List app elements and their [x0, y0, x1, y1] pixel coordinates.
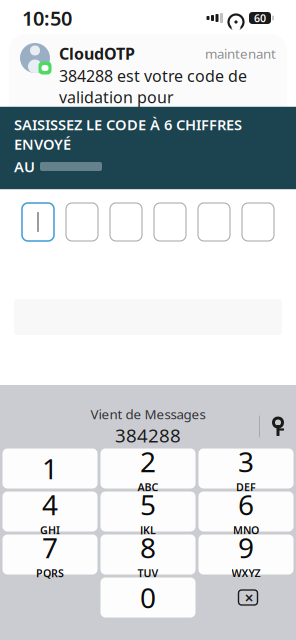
button[interactable]: 6: [198, 491, 293, 531]
staticText: 2: [140, 443, 156, 480]
staticText: WXYZ: [231, 566, 260, 580]
staticText: JKL: [140, 523, 156, 537]
staticText: 9: [238, 529, 254, 566]
staticText: 10:50: [22, 5, 72, 31]
staticText: 384288 est votre code de validation pour: [59, 65, 247, 108]
button[interactable]: 2: [100, 448, 195, 488]
button[interactable]: Code digit: [154, 203, 186, 241]
staticText: CloudOTP: [59, 43, 135, 64]
button[interactable]: 1: [2, 448, 97, 488]
staticText: TUV: [137, 566, 158, 580]
button[interactable]: CloudOTP: [9, 34, 287, 139]
staticText: SAISISSEZ LE CODE À 6 CHIFFRES ENVOYÉ: [14, 115, 242, 154]
button[interactable]: 7: [2, 534, 97, 574]
staticText: 6: [238, 486, 254, 523]
staticText: PQRS: [36, 566, 64, 580]
staticText: 4: [42, 486, 58, 523]
button[interactable]: Code digit: [110, 203, 142, 241]
button[interactable]: Code digit 1: [22, 203, 54, 241]
button[interactable]: Code digit: [66, 203, 98, 241]
staticText: DEF: [236, 480, 256, 494]
staticText: 3: [238, 443, 254, 480]
button[interactable]: Code digit: [242, 203, 274, 241]
staticText: 1: [42, 450, 58, 487]
button[interactable]: 8: [100, 534, 195, 574]
staticText: ABC: [137, 480, 158, 494]
staticText: MNO: [233, 523, 259, 537]
staticText: GHI: [40, 523, 60, 537]
staticText: 60: [254, 11, 266, 25]
button[interactable]: Delete: [198, 577, 293, 617]
button[interactable]: 0: [100, 577, 195, 617]
button[interactable]: 5: [100, 491, 195, 531]
staticText: Vient de Messages: [90, 405, 205, 423]
staticText: Yumo : Plats faits maison.: [59, 109, 253, 130]
staticText: ×: [244, 587, 253, 608]
staticText: 384288: [115, 423, 181, 448]
button[interactable]: Vient de Messages: [28, 408, 268, 444]
staticText: 0: [140, 579, 156, 616]
staticText: maintenant: [205, 45, 276, 62]
staticText: 7: [42, 529, 58, 566]
button[interactable]: 4: [2, 491, 97, 531]
button[interactable]: 9: [198, 534, 293, 574]
button[interactable]: Passwords: [260, 408, 296, 444]
staticText: AU: [14, 157, 35, 176]
button[interactable]: 3: [198, 448, 293, 488]
staticText: 8: [140, 529, 156, 566]
button[interactable]: Code digit: [198, 203, 230, 241]
staticText: 5: [140, 486, 156, 523]
